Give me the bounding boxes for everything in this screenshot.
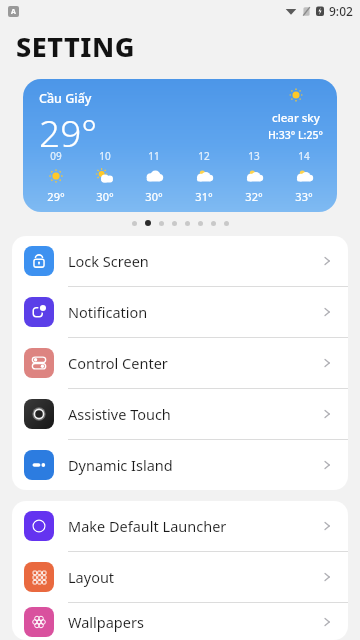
staticText: 29°: [39, 107, 98, 157]
staticText: SETTING: [16, 28, 135, 65]
button[interactable]: Lock Screen: [12, 236, 348, 286]
staticText: 11: [148, 149, 160, 163]
staticText: 09: [50, 149, 62, 163]
staticText: 9:02: [329, 3, 353, 19]
staticText: 30°: [96, 189, 114, 204]
button[interactable]: Assistive Touch: [12, 389, 348, 439]
staticText: 12: [198, 149, 210, 163]
staticText: 29°: [47, 189, 65, 204]
staticText: 13: [248, 149, 260, 163]
staticText: Notification: [68, 302, 148, 322]
button[interactable]: Layout: [12, 552, 348, 602]
staticText: Control Center: [68, 353, 168, 373]
staticText: Assistive Touch: [68, 404, 171, 424]
staticText: 14: [298, 149, 310, 163]
button[interactable]: Cầu Giấy: [23, 79, 337, 212]
staticText: 33°: [295, 189, 313, 204]
staticText: 10: [99, 149, 111, 163]
staticText: Dynamic Island: [68, 455, 173, 475]
staticText: Wallpapers: [68, 612, 144, 632]
staticText: 32°: [245, 189, 263, 204]
staticText: A: [11, 7, 16, 17]
staticText: Cầu Giấy: [39, 90, 92, 107]
button[interactable]: Notification: [12, 287, 348, 337]
staticText: Layout: [68, 567, 115, 587]
staticText: Lock Screen: [68, 251, 149, 271]
staticText: H:33° L:25°: [268, 128, 323, 142]
button[interactable]: Dynamic Island: [12, 440, 348, 490]
staticText: 31°: [195, 189, 213, 204]
button[interactable]: Make Default Launcher: [12, 501, 348, 551]
staticText: 30°: [145, 189, 163, 204]
staticText: clear sky: [272, 110, 320, 126]
staticText: Make Default Launcher: [68, 516, 227, 536]
button[interactable]: Wallpapers: [12, 603, 348, 640]
button[interactable]: Control Center: [12, 338, 348, 388]
